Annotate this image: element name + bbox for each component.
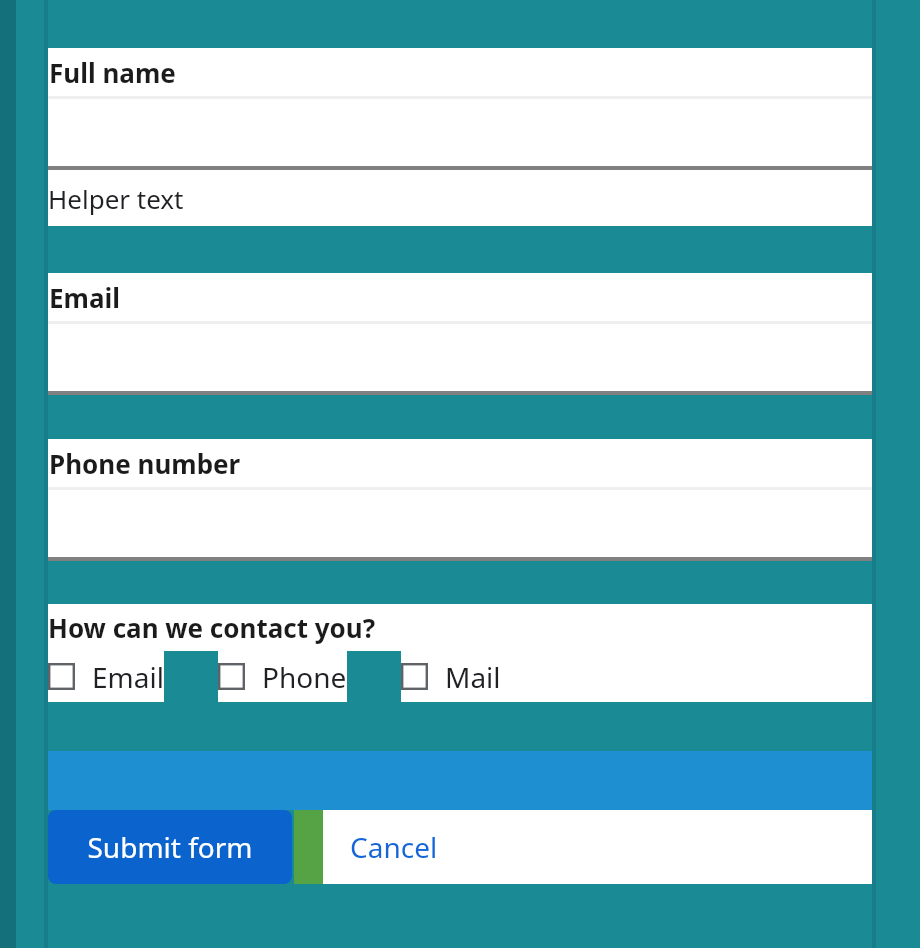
staticText: Helper text xyxy=(48,181,184,216)
staticText: Phone number xyxy=(49,446,241,481)
button[interactable]: Submit form xyxy=(48,810,292,884)
button[interactable]: Email xyxy=(48,651,164,702)
staticText: Mail xyxy=(445,658,501,696)
staticText: Email xyxy=(49,280,121,315)
button[interactable]: Mail xyxy=(401,651,501,702)
staticText: Email xyxy=(92,658,164,696)
button[interactable]: Full name xyxy=(48,48,872,226)
button[interactable]: Cancel xyxy=(323,810,872,884)
button[interactable]: Phone number xyxy=(48,439,872,561)
staticText: How can we contact you? xyxy=(48,610,376,645)
button[interactable]: Email xyxy=(48,273,872,395)
staticText: Cancel xyxy=(350,828,438,866)
button[interactable]: Phone xyxy=(218,651,347,702)
staticText: Full name xyxy=(49,55,176,90)
staticText: Phone xyxy=(262,658,347,696)
staticText: Submit form xyxy=(87,828,253,866)
